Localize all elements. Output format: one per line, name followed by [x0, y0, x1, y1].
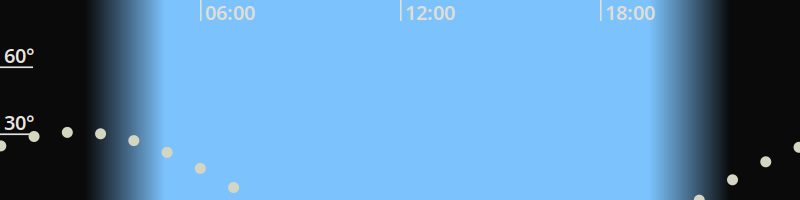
staticText: 06:00 [205, 0, 255, 26]
staticText: 30° [4, 109, 35, 136]
staticText: 12:00 [405, 0, 455, 26]
staticText: 60° [4, 42, 35, 69]
staticText: 18:00 [605, 0, 655, 26]
